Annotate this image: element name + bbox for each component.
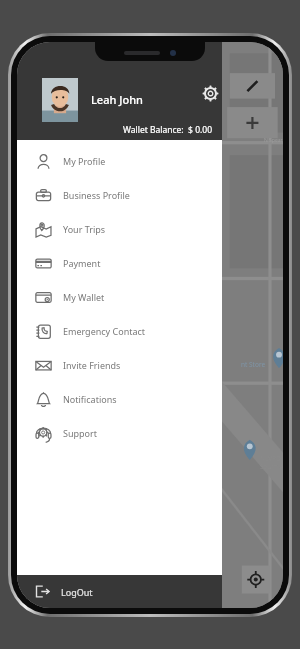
button[interactable]: LogOut [17, 575, 222, 608]
staticText: My Wallet [63, 291, 105, 303]
staticText: Notifications [63, 393, 117, 405]
staticText: Leah John [91, 92, 143, 107]
staticText: Invite Friends [63, 359, 121, 371]
button[interactable]: My Profile [17, 144, 222, 178]
button[interactable]: Emergency Contact [17, 314, 222, 348]
staticText: nt Store [241, 360, 266, 369]
button[interactable]: My Wallet [17, 280, 222, 314]
staticText: N Spear St [264, 137, 283, 144]
staticText: Support [63, 427, 97, 439]
button[interactable]: Notifications [17, 382, 222, 416]
button[interactable]: Settings [197, 80, 223, 106]
button[interactable]: Payment [17, 246, 222, 280]
staticText: Your Trips [63, 223, 106, 235]
staticText: My Profile [63, 155, 106, 167]
button[interactable]: Support [17, 416, 222, 450]
staticText: Business Profile [63, 189, 130, 201]
button[interactable]: Invite Friends [17, 348, 222, 382]
staticText: LogOut [61, 586, 93, 598]
staticText: Emergency Contact [63, 325, 146, 337]
button[interactable]: Your Trips [17, 212, 222, 246]
button[interactable]: Business Profile [17, 178, 222, 212]
staticText: Wallet Balance: $ 0.00 [17, 124, 212, 136]
staticText: Payment [63, 257, 101, 269]
